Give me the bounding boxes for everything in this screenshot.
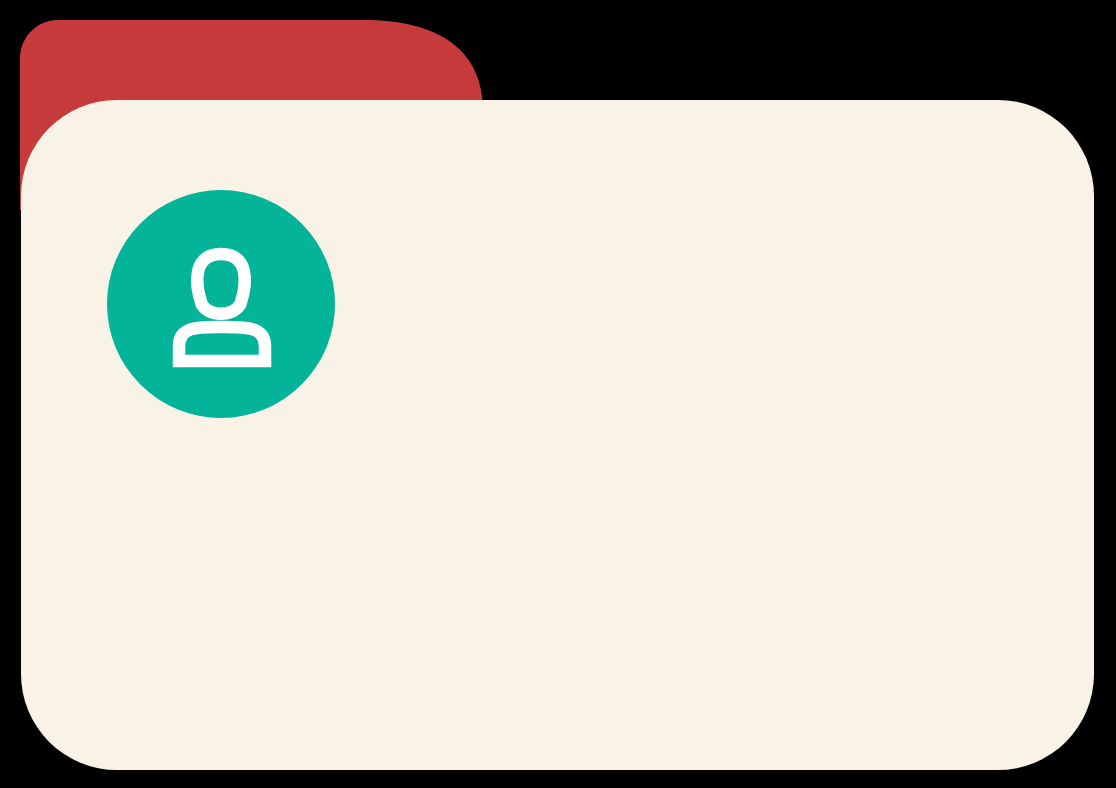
button[interactable]: Contacts folder xyxy=(0,0,1116,788)
